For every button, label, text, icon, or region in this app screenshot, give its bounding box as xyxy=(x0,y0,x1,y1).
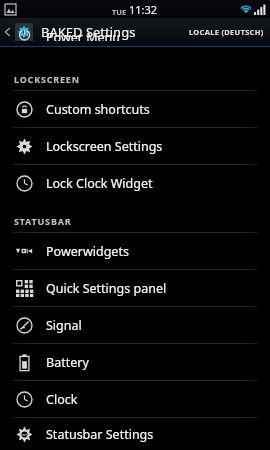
staticText: Lockscreen Settings xyxy=(46,138,163,155)
staticText: LOCALE (DEUTSCH) xyxy=(189,27,264,37)
button[interactable]: Lock Clock Widget xyxy=(0,165,270,201)
staticText: Powerwidgets xyxy=(46,243,129,260)
staticText: BAKED Settings xyxy=(41,23,136,41)
staticText: TUE xyxy=(112,7,129,17)
staticText: Battery xyxy=(46,354,89,371)
staticText: Quick Settings panel xyxy=(46,280,167,297)
staticText: Clock xyxy=(46,391,78,408)
staticText: Custom shortcuts xyxy=(46,101,150,118)
button[interactable]: LOCALE (DEUTSCH) xyxy=(189,27,270,37)
button[interactable]: Signal xyxy=(0,307,270,343)
button[interactable]: Custom shortcuts xyxy=(0,91,270,127)
button[interactable]: Statusbar Settings xyxy=(0,418,270,450)
staticText: Lock Clock Widget xyxy=(46,175,153,192)
staticText: Statusbar Settings xyxy=(46,426,154,443)
staticText: STATUSBAR xyxy=(14,215,72,227)
button[interactable]: Lockscreen Settings xyxy=(0,128,270,164)
staticText: LOCKSCREEN xyxy=(14,73,80,85)
staticText: 11:32 xyxy=(129,2,158,17)
button[interactable]: Quick Settings panel xyxy=(0,270,270,306)
staticText: Power Menu xyxy=(46,29,121,41)
button[interactable]: Powerwidgets xyxy=(0,233,270,269)
button[interactable]: Clock xyxy=(0,381,270,417)
staticText: Signal xyxy=(46,317,82,334)
button[interactable]: Up xyxy=(0,18,35,46)
button[interactable]: Battery xyxy=(0,344,270,380)
